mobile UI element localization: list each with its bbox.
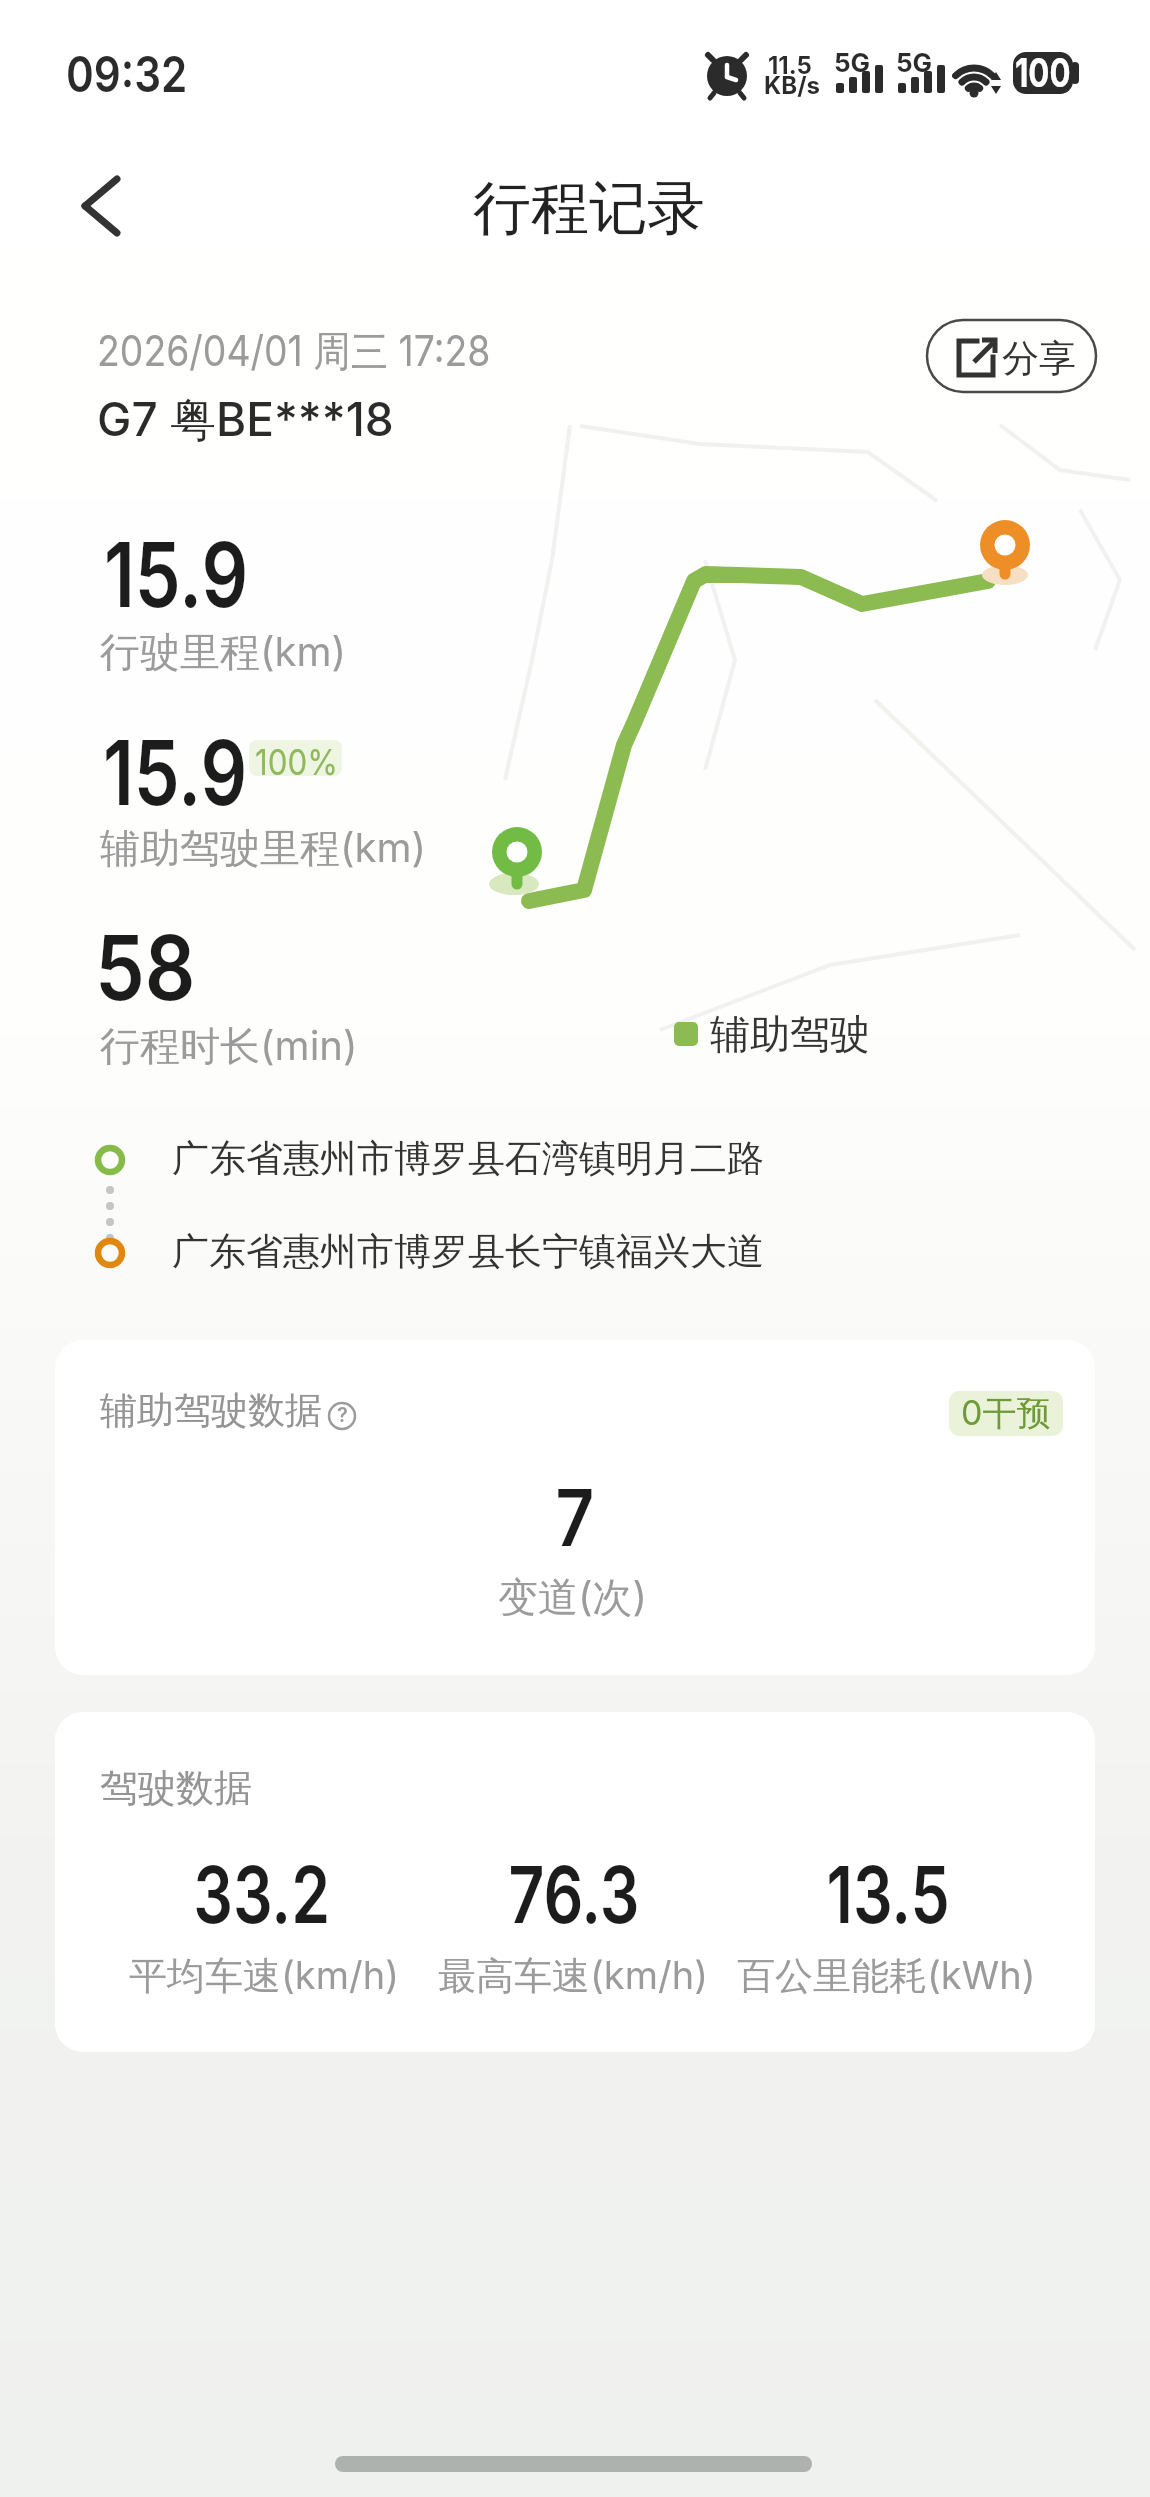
staticText: 最高车速(km/h) — [438, 1952, 709, 2000]
staticText: 驾驶数据 — [100, 1764, 252, 1812]
staticText: 33.2 — [193, 1847, 331, 1941]
staticText: KB/s — [764, 71, 820, 100]
staticText: 行程时长(min) — [100, 1021, 358, 1072]
staticText: 0干预 — [961, 1392, 1051, 1435]
staticText: 76.3 — [508, 1847, 640, 1941]
button[interactable] — [927, 320, 1096, 392]
staticText: 5G — [896, 47, 933, 78]
staticText: 15.9 — [103, 719, 247, 827]
staticText: 行驶里程(km) — [100, 627, 347, 678]
staticText: G7 粤BE***18 — [97, 391, 394, 449]
staticText: 百公里能耗(kWh) — [737, 1952, 1036, 2000]
staticText: 辅助驾驶里程(km) — [100, 823, 427, 874]
staticText: ? — [337, 1403, 348, 1427]
staticText: 11.5 — [768, 51, 812, 80]
staticText: 平均车速(km/h) — [129, 1952, 400, 2000]
staticText: 13.5 — [826, 1847, 950, 1941]
staticText: 2026/04/01 周三 17:28 — [97, 325, 491, 378]
staticText: 100% — [255, 740, 336, 776]
staticText: 辅助驾驶数据 — [100, 1387, 322, 1434]
staticText: 58 — [95, 914, 196, 1022]
staticText: 5G — [834, 47, 871, 78]
staticText: 09:32 — [66, 45, 187, 104]
staticText: 广东省惠州市博罗县石湾镇明月二路 — [172, 1135, 764, 1182]
staticText: 变道(次) — [498, 1572, 648, 1623]
staticText: 辅助驾驶 — [710, 1009, 870, 1059]
staticText: 100 — [1015, 48, 1071, 96]
staticText: 行程记录 — [473, 172, 705, 245]
staticText: 分享 — [1002, 335, 1076, 382]
staticText: 广东省惠州市博罗县长宁镇福兴大道 — [172, 1228, 764, 1275]
staticText: 7 — [555, 1469, 595, 1565]
button[interactable] — [60, 160, 150, 250]
staticText: 15.9 — [104, 521, 248, 629]
